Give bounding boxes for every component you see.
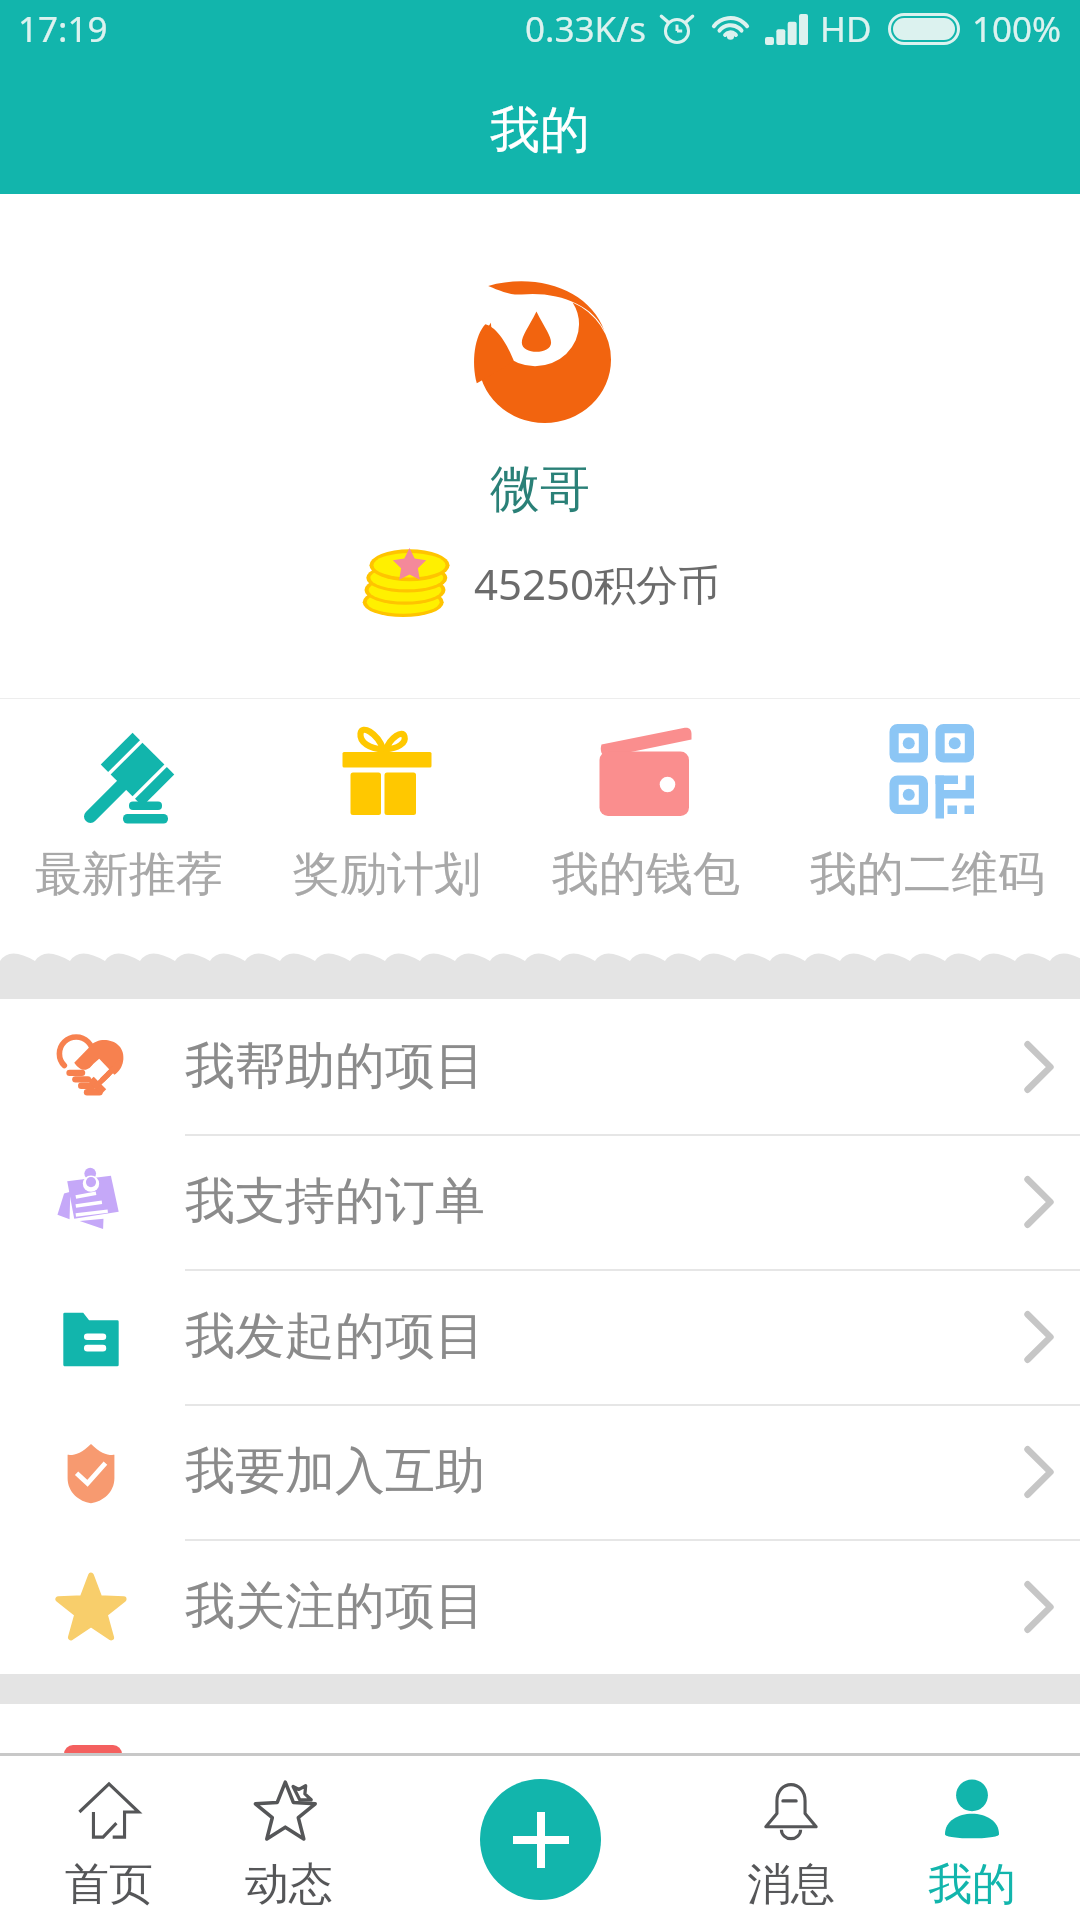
staticText: 我关注的项目 bbox=[185, 1575, 485, 1638]
button[interactable]: 最新推荐 bbox=[35, 699, 223, 904]
staticText: 动态 bbox=[245, 1857, 333, 1912]
button[interactable]: 我的 bbox=[868, 1753, 1076, 1920]
staticText: 最新推荐 bbox=[35, 845, 223, 904]
staticText: 我的 bbox=[928, 1857, 1016, 1912]
staticText: 我支持的订单 bbox=[185, 1170, 485, 1233]
staticText: 奖励计划 bbox=[293, 845, 481, 904]
button[interactable]: 我要加入互助 bbox=[0, 1404, 1080, 1539]
button[interactable]: 消息 bbox=[687, 1753, 895, 1920]
staticText: 首页 bbox=[65, 1857, 153, 1912]
staticText: HD bbox=[820, 5, 872, 53]
button[interactable]: 我帮助的项目 bbox=[0, 999, 1080, 1134]
staticText: 我帮助的项目 bbox=[185, 1035, 485, 1098]
button[interactable]: 动态 bbox=[185, 1753, 393, 1920]
staticText: 45250积分币 bbox=[474, 555, 721, 612]
staticText: 17:19 bbox=[18, 5, 108, 53]
staticText: 消息 bbox=[747, 1857, 835, 1912]
button[interactable]: 首页 bbox=[5, 1753, 213, 1920]
staticText: 0.33K/s bbox=[525, 5, 646, 53]
staticText: 100% bbox=[972, 5, 1062, 53]
button[interactable]: 奖励计划 bbox=[293, 699, 481, 904]
staticText: 我的钱包 bbox=[552, 845, 740, 904]
button[interactable]: 我发起的项目 bbox=[0, 1269, 1080, 1404]
button[interactable]: 我关注的项目 bbox=[0, 1539, 1080, 1674]
button[interactable] bbox=[0, 1704, 1080, 1758]
staticText: 我的二维码 bbox=[810, 845, 1045, 904]
button[interactable]: 我支持的订单 bbox=[0, 1134, 1080, 1269]
staticText: 我要加入互助 bbox=[185, 1440, 485, 1503]
button[interactable]: 我的钱包 bbox=[552, 699, 740, 904]
button[interactable]: 我的二维码 bbox=[810, 699, 1045, 904]
staticText: 我的 bbox=[490, 99, 590, 162]
staticText: 我发起的项目 bbox=[185, 1305, 485, 1368]
staticText: 微哥 bbox=[490, 458, 590, 521]
button[interactable]: Add bbox=[480, 1779, 601, 1900]
